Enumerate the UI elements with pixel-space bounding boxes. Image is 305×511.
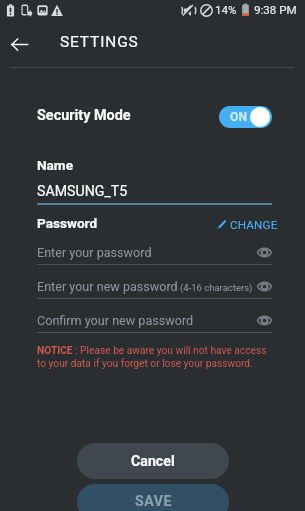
staticText: Confirm your new password [37,313,194,328]
button[interactable]: Confirm your new password [37,310,272,330]
staticText: SAMSUNG_T5 [37,183,128,200]
staticText: 9:38 PM [254,3,297,17]
button[interactable]: CHANGE [216,214,278,234]
staticText: (4-16 characters) [180,282,253,293]
staticText: NOTICE : Please be aware you will not ha… [37,345,270,369]
staticText: Cancel [131,453,175,470]
button[interactable]: Show password [256,278,272,294]
staticText: 14% [215,3,237,17]
staticText: Security Mode [37,107,131,124]
button[interactable]: Cancel [77,443,229,479]
button[interactable]: Enter your new password [37,276,272,296]
button[interactable]: Back [5,30,34,59]
staticText: Enter your new password [37,279,178,294]
button[interactable]: SAVE [77,484,229,511]
staticText: Name [37,157,73,173]
staticText: Enter your password [37,245,152,260]
button[interactable]: Enter your password [37,242,272,262]
staticText: Password [37,215,98,231]
button[interactable]: Show password [256,244,272,260]
staticText: SAVE [135,493,172,510]
staticText: CHANGE [230,218,278,232]
button[interactable]: Security Mode on [219,106,272,128]
button[interactable]: Show password [256,312,272,328]
staticText: ON [230,110,248,124]
staticText: SETTINGS [60,33,139,51]
